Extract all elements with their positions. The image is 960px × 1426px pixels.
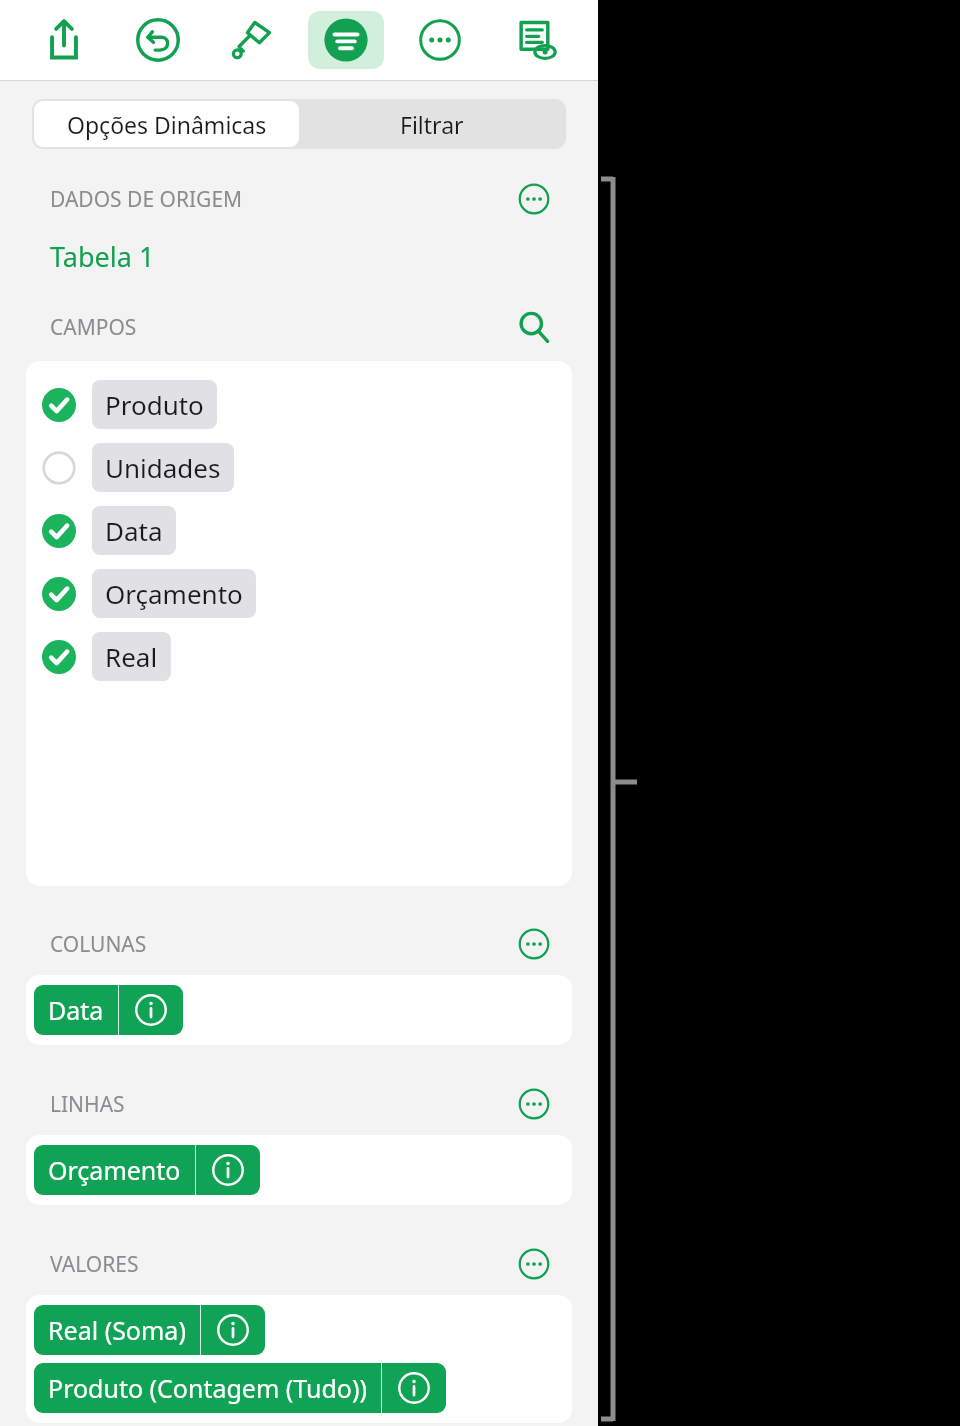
staticText: Data bbox=[105, 513, 163, 548]
staticText: Opções Dinâmicas bbox=[67, 109, 267, 140]
staticText: DADOS DE ORIGEM bbox=[50, 185, 243, 214]
button[interactable]: Opções Dinâmicas bbox=[34, 101, 299, 147]
button[interactable]: Real bbox=[26, 625, 572, 688]
button[interactable]: Undo bbox=[120, 11, 196, 69]
button[interactable]: Filtrar bbox=[299, 101, 564, 147]
staticText: Real (Soma) bbox=[48, 1313, 186, 1347]
staticText: Orçamento bbox=[48, 1153, 181, 1187]
button[interactable]: More options bbox=[512, 922, 556, 966]
staticText: Data bbox=[48, 993, 104, 1027]
button[interactable]: Real (Soma) bbox=[34, 1305, 265, 1355]
button[interactable]: Document preview bbox=[496, 11, 572, 69]
staticText: CAMPOS bbox=[50, 313, 137, 342]
staticText: Produto bbox=[105, 387, 204, 422]
button[interactable]: Search bbox=[512, 305, 556, 349]
button[interactable]: Data bbox=[26, 499, 572, 562]
staticText: VALORES bbox=[50, 1250, 139, 1279]
button[interactable]: Data bbox=[34, 985, 183, 1035]
button[interactable]: More options bbox=[512, 177, 556, 221]
button[interactable]: Share bbox=[26, 11, 102, 69]
staticText: Filtrar bbox=[400, 109, 464, 140]
staticText: Orçamento bbox=[105, 576, 243, 611]
staticText: Tabela 1 bbox=[50, 238, 155, 275]
button[interactable]: More options bbox=[512, 1242, 556, 1286]
staticText: Real bbox=[105, 639, 158, 674]
staticText: Unidades bbox=[105, 450, 221, 485]
button[interactable]: Organize bbox=[308, 11, 384, 69]
button[interactable]: More bbox=[402, 11, 478, 69]
staticText: Produto (Contagem (Tudo)) bbox=[48, 1371, 367, 1405]
staticText: LINHAS bbox=[50, 1090, 125, 1119]
button[interactable]: Produto bbox=[26, 373, 572, 436]
button[interactable]: More options bbox=[512, 1082, 556, 1126]
button[interactable]: Orçamento bbox=[34, 1145, 260, 1195]
staticText: COLUNAS bbox=[50, 930, 147, 959]
button[interactable]: Produto (Contagem (Tudo)) bbox=[34, 1363, 446, 1413]
button[interactable]: Orçamento bbox=[26, 562, 572, 625]
button[interactable]: Unidades bbox=[26, 436, 572, 499]
button[interactable]: Tabela 1 bbox=[50, 238, 155, 275]
button[interactable]: Format brush bbox=[214, 11, 290, 69]
